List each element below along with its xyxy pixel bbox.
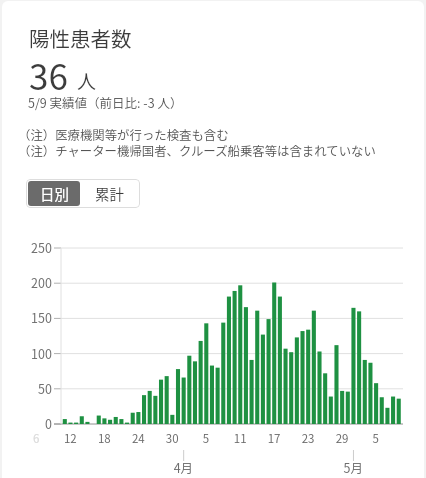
button[interactable]: 日別	[28, 181, 80, 206]
staticText: 5/9 実績値（前日比: -3 人）	[28, 93, 183, 111]
staticText: 陽性患者数	[29, 23, 132, 53]
button[interactable]: 累計	[80, 181, 138, 206]
staticText: （注）医療機関等が行った検査も含む	[18, 126, 229, 144]
staticText: 日別	[40, 183, 69, 204]
staticText: 36	[29, 49, 68, 100]
staticText: 累計	[95, 183, 124, 204]
staticText: 人	[77, 67, 97, 95]
staticText: （注）チャーター機帰国者、クルーズ船乗客等は含まれていない	[18, 142, 376, 160]
